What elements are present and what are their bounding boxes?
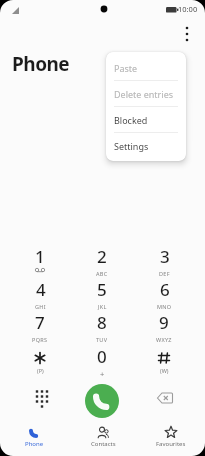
button[interactable]: Phone bbox=[0, 423, 69, 456]
staticText: 1 bbox=[35, 245, 45, 268]
staticText: Settings bbox=[114, 140, 149, 152]
staticText: 4 bbox=[36, 278, 46, 301]
staticText: JKL bbox=[98, 303, 107, 310]
staticText: 7 bbox=[35, 311, 45, 334]
button[interactable]: Delete entries bbox=[106, 81, 186, 106]
button[interactable] bbox=[20, 385, 64, 413]
staticText: 9 bbox=[159, 311, 169, 334]
staticText: Contacts bbox=[91, 440, 116, 448]
button[interactable]: 7 bbox=[10, 311, 70, 343]
button[interactable]: 2 bbox=[72, 245, 132, 277]
staticText: 8 bbox=[97, 311, 107, 334]
staticText: 3 bbox=[160, 245, 170, 268]
staticText: 5 bbox=[97, 278, 107, 301]
button[interactable]: 8 bbox=[72, 311, 132, 343]
button[interactable]: Contacts bbox=[69, 423, 137, 456]
staticText: (W) bbox=[160, 367, 169, 374]
staticText: Blocked bbox=[114, 114, 148, 126]
staticText: 6 bbox=[160, 278, 170, 301]
button[interactable]: Settings bbox=[106, 133, 186, 158]
button[interactable]: 4 bbox=[10, 278, 70, 310]
button[interactable]: (W) bbox=[134, 345, 194, 377]
button[interactable]: 5 bbox=[72, 278, 132, 310]
button[interactable] bbox=[148, 386, 182, 410]
staticText: 0 bbox=[97, 345, 107, 368]
button[interactable]: Favourites bbox=[137, 423, 205, 456]
staticText: 2 bbox=[97, 245, 107, 268]
button[interactable]: Paste bbox=[106, 55, 186, 80]
staticText: 10:00 bbox=[178, 4, 198, 14]
button[interactable]: (P) bbox=[10, 345, 70, 377]
staticText: + bbox=[100, 369, 105, 377]
staticText: DEF bbox=[159, 270, 170, 277]
button[interactable] bbox=[179, 22, 195, 46]
staticText: Paste bbox=[114, 62, 138, 74]
button[interactable]: Blocked bbox=[106, 107, 186, 132]
staticText: Delete entries bbox=[114, 88, 174, 100]
staticText: Phone bbox=[12, 51, 70, 77]
button[interactable]: 6 bbox=[134, 278, 194, 310]
button[interactable]: 1 bbox=[10, 245, 70, 277]
staticText: GHI bbox=[35, 303, 46, 310]
button[interactable]: 9 bbox=[134, 311, 194, 343]
button[interactable]: 0 bbox=[72, 345, 132, 377]
button[interactable]: 3 bbox=[134, 245, 194, 277]
staticText: TUV bbox=[96, 336, 108, 343]
staticText: Phone bbox=[25, 440, 44, 448]
staticText: PQRS bbox=[32, 336, 48, 343]
staticText: MNO bbox=[157, 303, 172, 310]
staticText: (P) bbox=[37, 367, 44, 374]
staticText: ABC bbox=[96, 270, 108, 277]
staticText: Favourites bbox=[156, 440, 186, 448]
staticText: WXYZ bbox=[156, 336, 172, 343]
button[interactable] bbox=[85, 384, 119, 418]
